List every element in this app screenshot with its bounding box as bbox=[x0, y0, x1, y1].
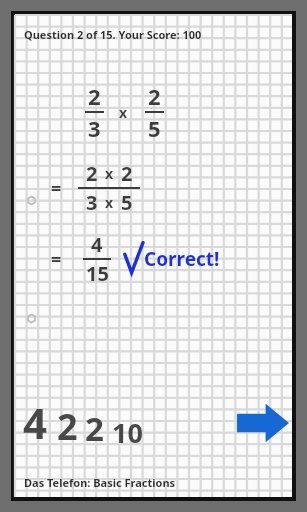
staticText: 2 bbox=[86, 160, 98, 187]
staticText: Correct! bbox=[144, 246, 220, 272]
staticText: 5 bbox=[121, 189, 133, 216]
staticText: 10 bbox=[112, 414, 143, 451]
staticText: 2 bbox=[57, 402, 78, 451]
staticText: 2 bbox=[88, 81, 101, 111]
staticText: 4 bbox=[23, 394, 48, 451]
staticText: 5 bbox=[148, 113, 161, 143]
staticText: 3 bbox=[86, 189, 98, 216]
staticText: 3 bbox=[88, 113, 101, 143]
staticText: Das Telefon: Basic Fractions bbox=[24, 475, 176, 490]
staticText: 2 bbox=[148, 81, 161, 111]
staticText: = bbox=[51, 176, 62, 201]
staticText: x bbox=[105, 164, 114, 183]
staticText: x bbox=[105, 193, 114, 212]
staticText: 4 bbox=[91, 231, 103, 258]
staticText: 2 bbox=[121, 160, 133, 187]
button[interactable]: Next question bbox=[237, 402, 289, 444]
staticText: 15 bbox=[86, 260, 109, 287]
staticText: Question 2 of 15. Your Score: 100 bbox=[24, 27, 202, 42]
staticText: 2 bbox=[85, 406, 104, 451]
staticText: = bbox=[51, 247, 62, 272]
staticText: x bbox=[119, 103, 128, 122]
